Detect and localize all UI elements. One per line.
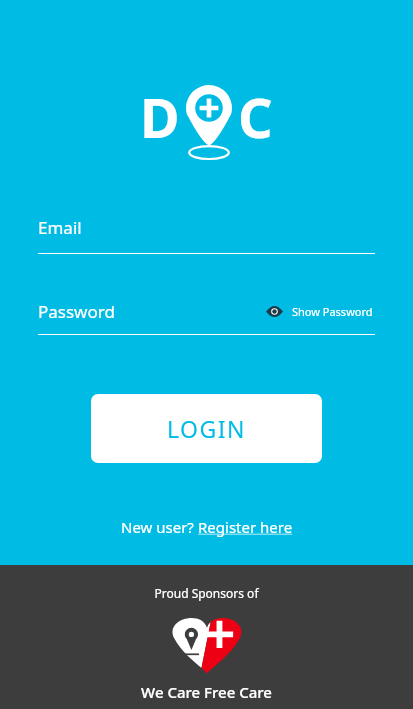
button[interactable]: LOGIN xyxy=(91,394,322,463)
button[interactable]: Password xyxy=(38,300,115,323)
button[interactable]: Show Password xyxy=(264,302,375,321)
button[interactable]: New user? xyxy=(115,513,299,541)
staticText: Show Password xyxy=(292,304,373,319)
staticText: Register here xyxy=(198,517,293,537)
staticText: C xyxy=(238,80,273,154)
staticText: New user? xyxy=(121,517,198,537)
staticText: We Care Free Care xyxy=(141,682,272,702)
other: Show Password xyxy=(266,306,283,317)
staticText: D xyxy=(140,80,180,154)
staticText: Email xyxy=(38,216,82,239)
staticText: Proud Sponsors of xyxy=(154,585,259,601)
button[interactable]: Email xyxy=(38,216,375,254)
staticText: LOGIN xyxy=(167,413,247,444)
